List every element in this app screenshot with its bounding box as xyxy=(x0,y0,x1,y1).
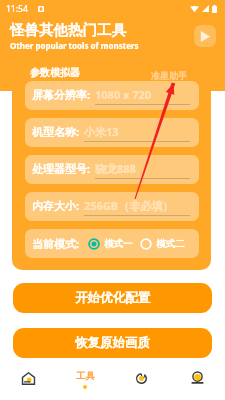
staticText: 256GB（非必填） xyxy=(84,198,174,213)
staticText: 1080 x 720 xyxy=(95,87,152,102)
staticText: 模式一 xyxy=(104,238,133,250)
staticText: 工具 xyxy=(76,370,95,382)
staticText: 开始优化配置 xyxy=(75,290,150,306)
button[interactable]: 内存大小: xyxy=(25,192,199,221)
button[interactable]: 参数模拟器 xyxy=(30,66,80,83)
button[interactable]: 准星助手 xyxy=(151,70,187,81)
staticText: 骁龙888 xyxy=(95,161,136,176)
button[interactable]: 工具 xyxy=(57,358,113,400)
button[interactable]: 恢复原始画质 xyxy=(13,328,212,358)
button[interactable]: 机型名称: xyxy=(25,118,199,147)
staticText: 屏幕分辨率: xyxy=(32,87,91,102)
staticText: 参数模拟器 xyxy=(30,66,80,79)
staticText: 机型名称: xyxy=(32,124,80,139)
staticText: 内存大小: xyxy=(32,198,80,213)
button[interactable]: Home xyxy=(0,358,57,400)
button[interactable]: 模式一 xyxy=(88,238,133,250)
button[interactable]: 模式二 xyxy=(140,238,185,250)
button[interactable]: 屏幕分辨率: xyxy=(25,81,199,110)
button[interactable]: Profile xyxy=(169,358,225,400)
staticText: 处理器型号: xyxy=(32,161,91,176)
button[interactable]: 开始优化配置 xyxy=(13,283,212,313)
button[interactable]: Play xyxy=(194,25,216,47)
staticText: 怪兽其他热门工具 xyxy=(10,21,126,39)
staticText: 11:54 xyxy=(6,3,28,15)
staticText: 恢复原始画质 xyxy=(75,335,150,351)
button[interactable]: Statistics xyxy=(113,358,169,400)
staticText: Other popular tools of monsters xyxy=(10,40,139,51)
staticText: 当前模式: xyxy=(32,236,80,251)
button[interactable]: 处理器型号: xyxy=(25,155,199,184)
staticText: 小米13 xyxy=(84,124,119,139)
staticText: 模式二 xyxy=(156,238,185,250)
